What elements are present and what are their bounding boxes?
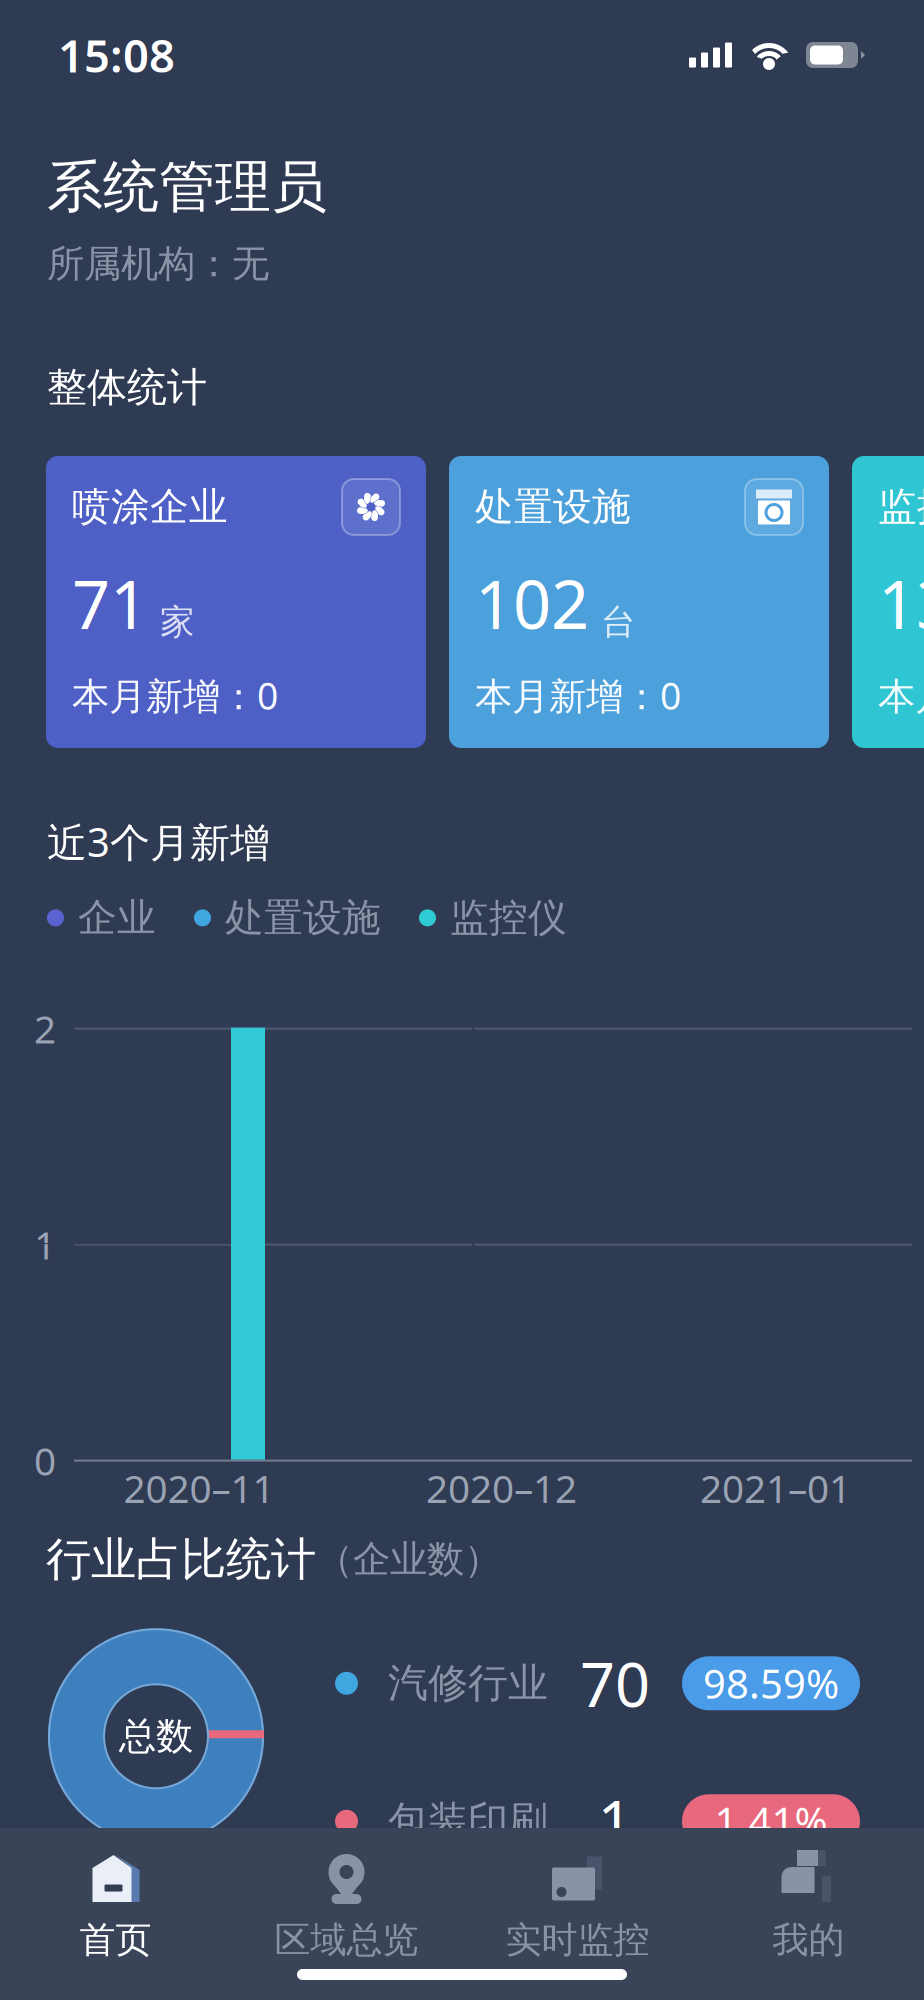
button[interactable]: 处置设施	[449, 456, 829, 748]
staticText: 监控仪	[450, 894, 567, 942]
staticText: 本月新增：0	[72, 670, 278, 720]
staticText: 1.41%	[714, 1795, 827, 1848]
staticText: 行业占比统计	[46, 1532, 316, 1587]
button[interactable]: 首页	[0, 1853, 231, 1962]
staticText: 2	[34, 1003, 56, 1054]
staticText: 1	[34, 1219, 56, 1270]
staticText: 102	[475, 559, 589, 647]
staticText: 企业	[78, 894, 156, 942]
staticText: 71	[72, 559, 148, 647]
staticText: 我的	[772, 1918, 844, 1962]
staticText: 总数	[119, 1713, 193, 1759]
staticText: 系统管理员	[47, 153, 327, 221]
staticText: 0	[34, 1435, 56, 1486]
button[interactable]: 实时监控	[462, 1853, 693, 1962]
staticText: 70	[580, 1643, 650, 1724]
button[interactable]: 我的	[693, 1853, 924, 1962]
staticText: 2020–11	[123, 1462, 274, 1514]
button[interactable]: 喷涂企业	[46, 456, 426, 748]
staticText: 区域总览	[274, 1918, 418, 1962]
staticText: 2021–01	[700, 1462, 851, 1514]
button[interactable]: 区域总览	[231, 1853, 462, 1962]
button[interactable]: 监控仪	[852, 456, 924, 748]
staticText: 1	[597, 1781, 632, 1862]
staticText: 家	[160, 601, 195, 643]
staticText: 台	[601, 601, 636, 643]
staticText: 处置设施	[225, 894, 381, 942]
staticText: （企业数）	[316, 1536, 501, 1582]
staticText: 本月新增：0	[878, 670, 924, 720]
staticText: 本月新增：0	[475, 670, 681, 720]
staticText: 监控仪	[878, 483, 924, 531]
staticText: 近3个月新增	[47, 815, 270, 868]
button[interactable]: 汽修行业	[335, 1652, 914, 1714]
staticText: 所属机构：无	[47, 241, 269, 287]
staticText: 98.59%	[703, 1657, 839, 1710]
staticText: 2020–12	[426, 1462, 577, 1514]
staticText: 喷涂企业	[72, 483, 228, 531]
staticText: 汽修行业	[388, 1659, 548, 1708]
staticText: 包装印刷	[388, 1797, 548, 1846]
staticText: 首页	[79, 1918, 151, 1962]
staticText: 13	[878, 559, 924, 647]
staticText: 实时监控	[505, 1918, 649, 1962]
button[interactable]: 包装印刷	[335, 1790, 914, 1852]
staticText: 处置设施	[475, 483, 631, 531]
staticText: 整体统计	[47, 363, 207, 412]
staticText: 15:08	[58, 25, 175, 85]
